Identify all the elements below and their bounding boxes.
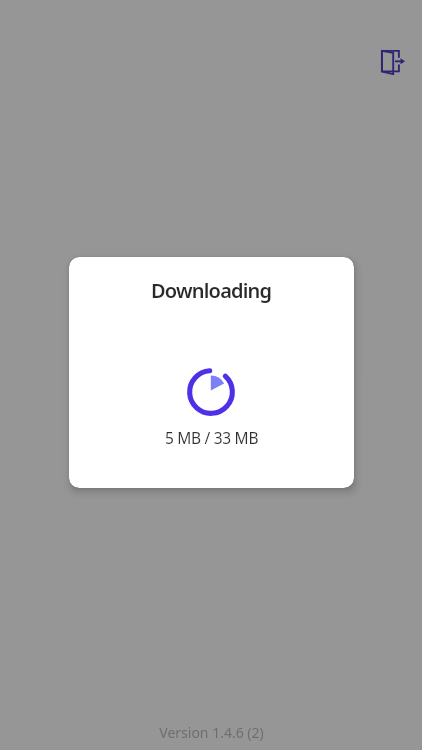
staticText: 5 MB / 33 MB [165,427,259,448]
button[interactable]: Log out [368,38,416,86]
staticText: Downloading [151,277,272,304]
staticText: Version 1.4.6 (2) [159,723,264,742]
